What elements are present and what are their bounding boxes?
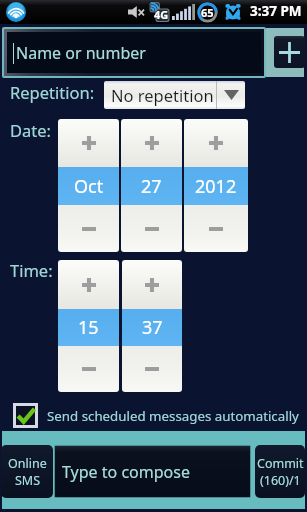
staticText: SMS	[15, 472, 41, 489]
button[interactable]: Online	[1, 445, 53, 498]
staticText: No repetition	[111, 84, 214, 106]
button[interactable]: Increase	[58, 119, 119, 167]
staticText: 27	[141, 174, 162, 199]
button[interactable]	[16, 406, 35, 425]
button[interactable]: Name or number	[7, 32, 261, 73]
staticText: Date:	[10, 119, 51, 141]
button[interactable]: Decrease	[58, 346, 119, 392]
button[interactable]: Increase	[184, 119, 248, 167]
button[interactable]: Decrease	[58, 205, 119, 252]
staticText: Send scheduled messages automatically	[47, 407, 299, 425]
button[interactable]: 2012	[184, 167, 248, 205]
button[interactable]: Decrease	[122, 346, 182, 392]
staticText: 4G	[154, 7, 169, 22]
staticText: 3:37 PM	[250, 2, 302, 20]
staticText: Repetition:	[10, 81, 95, 103]
staticText: Commit	[257, 455, 304, 472]
button[interactable]: Oct	[58, 167, 119, 205]
button[interactable]: 27	[121, 167, 182, 205]
button[interactable]: Add contact	[266, 28, 304, 77]
button[interactable]: Type to compose	[55, 446, 250, 497]
button[interactable]: Commit	[255, 445, 305, 498]
staticText: (160)/1	[260, 472, 301, 489]
staticText: 37	[142, 315, 163, 340]
button[interactable]: 37	[122, 309, 182, 346]
button[interactable]: Increase	[58, 260, 119, 309]
button[interactable]: Decrease	[121, 205, 182, 252]
staticText: 65	[201, 5, 214, 20]
button[interactable]: Decrease	[184, 205, 248, 252]
staticText: Oct	[74, 174, 104, 199]
staticText: 15	[78, 315, 99, 340]
staticText: 2012	[195, 174, 237, 199]
button[interactable]: No repetition	[104, 81, 245, 109]
button[interactable]: Increase	[121, 119, 182, 167]
staticText: Type to compose	[62, 461, 190, 483]
staticText: Online	[8, 455, 47, 472]
button[interactable]: Increase	[122, 260, 182, 309]
staticText: Time:	[10, 259, 53, 281]
staticText: Name or number	[16, 42, 146, 64]
button[interactable]: 15	[58, 309, 119, 346]
